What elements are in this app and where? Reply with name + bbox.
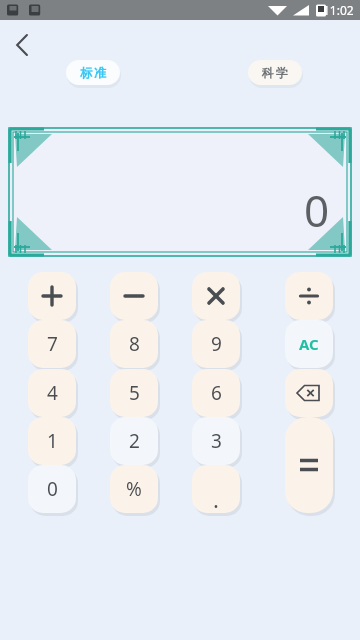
button[interactable]: Minus — [110, 272, 158, 320]
button[interactable]: AC — [285, 320, 333, 368]
button[interactable]: Plus — [28, 272, 76, 320]
staticText: 4 — [47, 380, 58, 406]
staticText: 6 — [211, 380, 222, 406]
button[interactable]: 6 — [192, 369, 240, 417]
staticText: 科学 — [261, 65, 289, 80]
button[interactable]: % — [110, 465, 158, 513]
staticText: 5 — [129, 380, 140, 406]
staticText: 0 — [47, 476, 58, 502]
button[interactable]: 3 — [192, 417, 240, 465]
staticText: 3 — [211, 428, 222, 454]
staticText: % — [126, 476, 142, 502]
button[interactable]: . — [192, 465, 240, 513]
button[interactable]: Back — [6, 28, 40, 62]
button[interactable]: 7 — [28, 320, 76, 368]
button[interactable]: Backspace — [285, 369, 333, 417]
staticText: 标准 — [79, 65, 107, 80]
staticText: 0 — [304, 180, 330, 240]
button[interactable]: 2 — [110, 417, 158, 465]
staticText: 7 — [47, 331, 58, 357]
button[interactable]: 9 — [192, 320, 240, 368]
button[interactable]: 4 — [28, 369, 76, 417]
staticText: . — [213, 484, 219, 513]
button[interactable]: 科学 — [248, 60, 302, 85]
staticText: 9 — [211, 331, 222, 357]
button[interactable]: 标准 — [66, 60, 120, 85]
button[interactable]: 8 — [110, 320, 158, 368]
button[interactable]: Divide — [285, 272, 333, 320]
button[interactable]: Multiply — [192, 272, 240, 320]
button[interactable]: 0 — [28, 465, 76, 513]
button[interactable]: 5 — [110, 369, 158, 417]
button[interactable]: Equals — [285, 417, 333, 513]
staticText: 2 — [129, 428, 140, 454]
staticText: 1 — [47, 428, 58, 454]
staticText: AC — [299, 334, 319, 354]
staticText: 11:02 — [323, 2, 354, 18]
button[interactable]: 1 — [28, 417, 76, 465]
staticText: 8 — [129, 331, 140, 357]
